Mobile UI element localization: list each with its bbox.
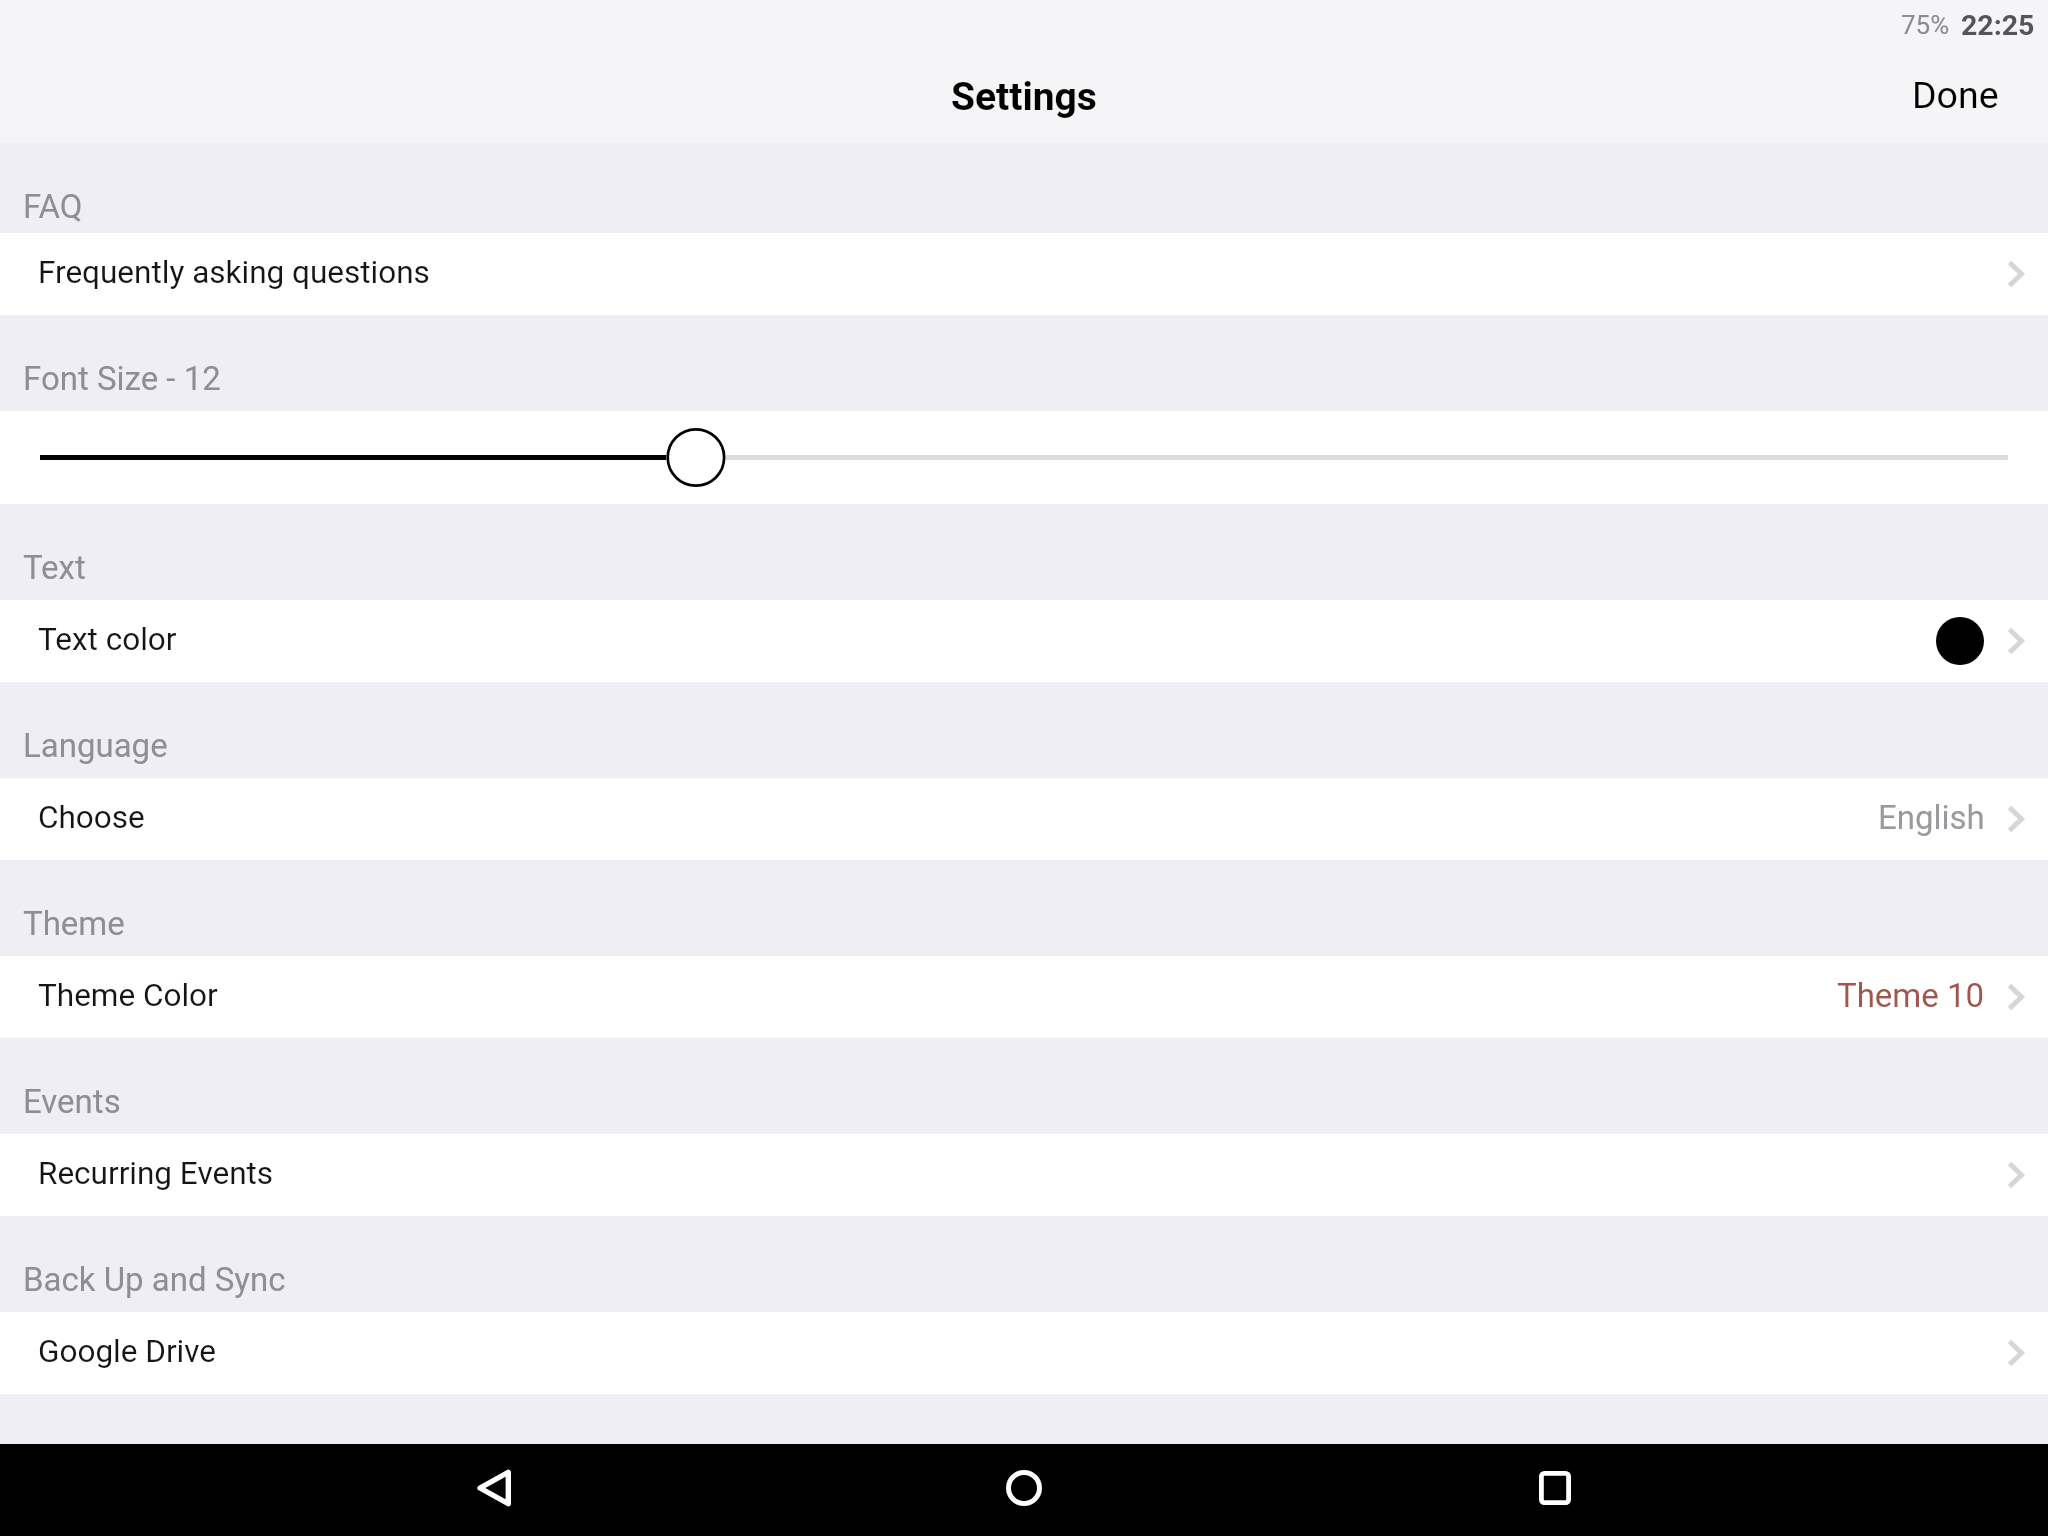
- staticText: Events: [23, 1082, 121, 1121]
- button[interactable]: Recent apps: [1495, 1444, 1615, 1536]
- staticText: Theme: [23, 904, 125, 943]
- button[interactable]: Theme Color: [0, 956, 2048, 1038]
- staticText: FAQ: [23, 187, 83, 226]
- staticText: Settings: [951, 74, 1097, 120]
- staticText: Back Up and Sync: [23, 1260, 286, 1299]
- button[interactable]: Done: [1890, 69, 2048, 121]
- button[interactable]: Frequently asking questions: [0, 233, 2048, 315]
- staticText: Language: [23, 726, 168, 765]
- button[interactable]: Google Drive: [0, 1312, 2048, 1394]
- staticText: Done: [1912, 73, 1999, 117]
- staticText: Text: [23, 548, 86, 587]
- staticText: Google Drive: [38, 1333, 217, 1370]
- staticText: 22:25: [1961, 9, 2035, 42]
- staticText: English: [1878, 798, 1985, 837]
- staticText: Choose: [38, 799, 145, 836]
- staticText: Frequently asking questions: [38, 254, 430, 291]
- button[interactable]: Font size slider: [0, 411, 2048, 504]
- button[interactable]: Home: [964, 1444, 1084, 1536]
- staticText: 75%: [1901, 10, 1950, 40]
- button[interactable]: Recurring Events: [0, 1134, 2048, 1216]
- staticText: Font Size - 12: [23, 359, 221, 398]
- button[interactable]: Choose: [0, 778, 2048, 860]
- staticText: Theme Color: [38, 977, 218, 1014]
- staticText: Recurring Events: [38, 1155, 274, 1192]
- button[interactable]: Back: [433, 1444, 553, 1536]
- staticText: Text color: [38, 621, 177, 658]
- button[interactable]: Text color: [0, 600, 2048, 682]
- staticText: Theme 10: [1837, 976, 1985, 1015]
